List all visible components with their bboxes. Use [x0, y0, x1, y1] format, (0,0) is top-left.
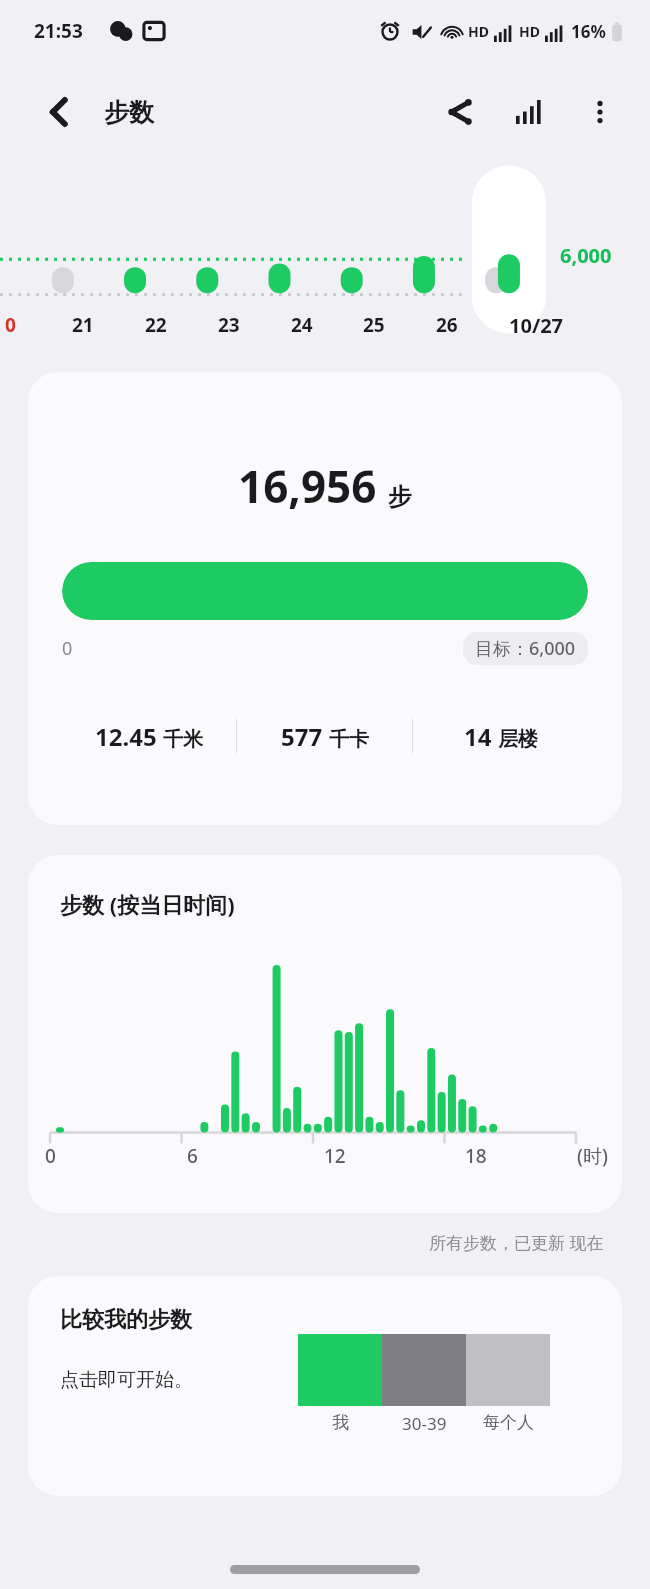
staticText: 6 — [187, 1143, 198, 1169]
staticText: 步 — [388, 482, 412, 512]
staticText: 25 — [363, 312, 385, 338]
staticText: 步数 (按当日时间) — [60, 889, 235, 919]
staticText: 点击即可开始。 — [60, 1368, 193, 1392]
staticText: 14 — [464, 720, 492, 753]
staticText: 30-39 — [402, 1412, 447, 1435]
staticText: 26 — [436, 312, 458, 338]
staticText: 18 — [465, 1143, 487, 1169]
button[interactable]: 16,956 — [28, 372, 622, 825]
staticText: 千米 — [163, 727, 203, 752]
staticText: 21:53 — [34, 18, 83, 44]
button[interactable]: Trends — [502, 84, 558, 140]
staticText: 0 — [45, 1143, 56, 1169]
staticText: 千卡 — [329, 727, 369, 752]
staticText: 步数 — [104, 97, 154, 128]
staticText: 比较我的步数 — [60, 1306, 192, 1334]
staticText: 所有步数，已更新 现在 — [429, 1231, 604, 1254]
button[interactable]: Back — [34, 86, 86, 138]
button[interactable]: Share — [432, 84, 488, 140]
staticText: 我 — [332, 1412, 349, 1433]
staticText: 23 — [218, 312, 240, 338]
staticText: 每个人 — [483, 1412, 534, 1433]
staticText: 0 — [5, 312, 16, 338]
button[interactable]: 比较我的步数 — [28, 1276, 622, 1496]
staticText: 6,000 — [560, 242, 612, 269]
staticText: HD — [468, 22, 489, 41]
button[interactable]: 步数 (按当日时间) — [28, 855, 622, 1213]
staticText: 22 — [145, 312, 167, 338]
staticText: 24 — [291, 312, 313, 338]
staticText: 0 — [62, 636, 73, 661]
staticText: 577 — [281, 720, 323, 753]
staticText: 12.45 — [95, 720, 157, 753]
staticText: 12 — [324, 1143, 346, 1169]
staticText: 21 — [72, 312, 94, 338]
staticText: 16% — [571, 20, 606, 43]
staticText: 目标：6,000 — [475, 636, 576, 661]
staticText: 层楼 — [498, 727, 538, 752]
staticText: HD — [519, 22, 540, 41]
button[interactable]: More options — [572, 84, 628, 140]
staticText: 10/27 — [509, 312, 564, 339]
staticText: 16,956 — [238, 456, 377, 516]
staticText: (时) — [577, 1143, 608, 1169]
